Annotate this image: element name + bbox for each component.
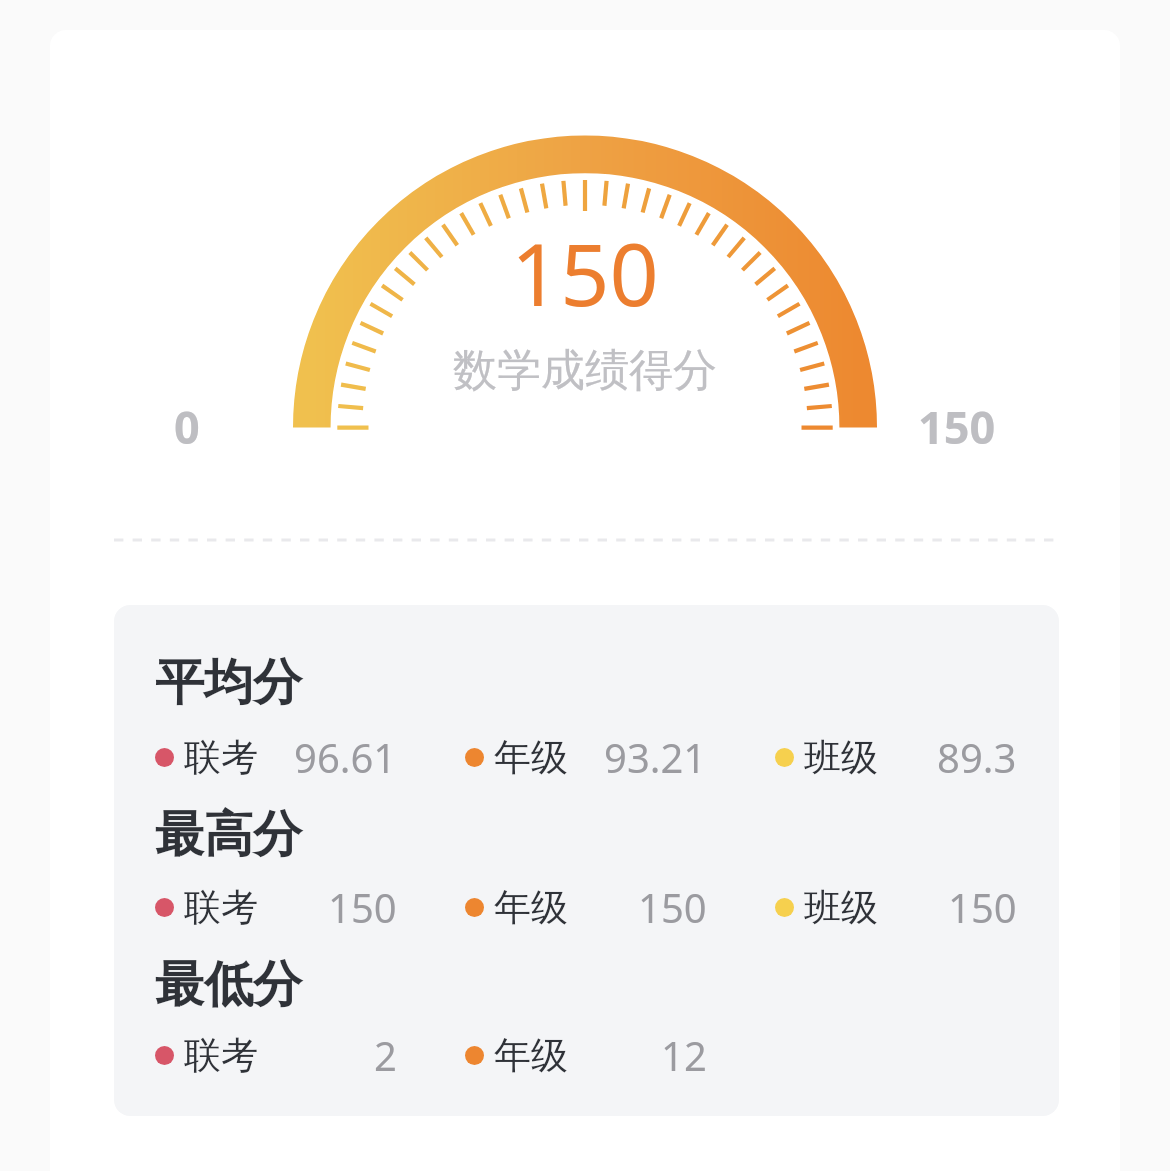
staticText: 联考 — [184, 884, 258, 931]
staticText: 2 — [374, 1028, 397, 1082]
staticText: 联考 — [184, 1032, 258, 1079]
button[interactable]: 年级 — [465, 879, 707, 935]
staticText: 联考 — [184, 734, 258, 781]
staticText: 96.61 — [294, 730, 397, 784]
staticText: 年级 — [494, 1032, 568, 1079]
button[interactable]: 联考 — [155, 729, 397, 785]
button[interactable]: 数学成绩得分 150 分 — [50, 30, 1120, 530]
staticText: 93.21 — [604, 730, 707, 784]
staticText: 年级 — [494, 884, 568, 931]
button[interactable]: 年级 — [465, 1027, 707, 1083]
staticText: 班级 — [804, 734, 878, 781]
staticText: 12 — [661, 1028, 707, 1082]
button[interactable]: 联考 — [155, 879, 397, 935]
staticText: 150 — [918, 396, 996, 457]
staticText: 150 — [511, 214, 659, 331]
button[interactable]: 联考 — [155, 1027, 397, 1083]
staticText: 150 — [328, 880, 397, 934]
staticText: 年级 — [494, 734, 568, 781]
staticText: 89.3 — [937, 730, 1017, 784]
button[interactable]: 班级 — [775, 879, 1017, 935]
staticText: 0 — [174, 396, 200, 457]
staticText: 平均分 — [155, 652, 302, 714]
staticText: 最低分 — [155, 954, 302, 1016]
staticText: 班级 — [804, 884, 878, 931]
staticText: 数学成绩得分 — [453, 343, 717, 398]
button[interactable]: 班级 — [775, 729, 1017, 785]
staticText: 150 — [948, 880, 1017, 934]
button[interactable]: 年级 — [465, 729, 707, 785]
staticText: 150 — [638, 880, 707, 934]
staticText: 最高分 — [155, 804, 302, 866]
